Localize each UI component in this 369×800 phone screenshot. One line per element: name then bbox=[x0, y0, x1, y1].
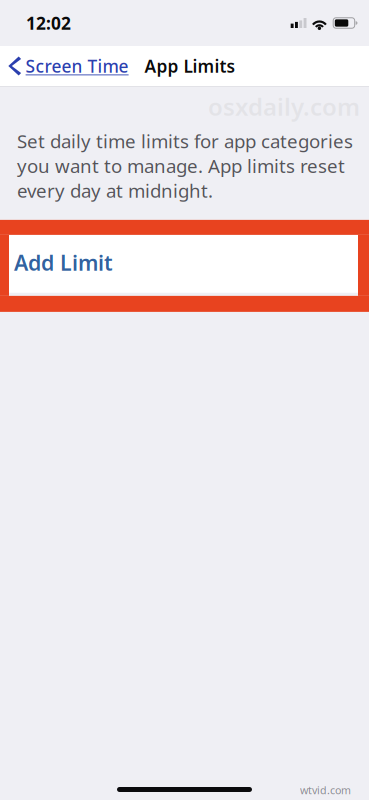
staticText: 12:02 bbox=[26, 11, 71, 34]
staticText: Set daily time limits for app categories… bbox=[17, 128, 353, 203]
staticText: osxdaily.com bbox=[208, 90, 360, 122]
staticText: Add Limit bbox=[14, 248, 113, 276]
staticText: App Limits bbox=[145, 54, 236, 77]
button[interactable]: Screen Time bbox=[0, 46, 135, 86]
staticText: Screen Time bbox=[26, 54, 129, 77]
staticText: wtvid.com bbox=[300, 783, 351, 797]
button[interactable]: Add Limit bbox=[0, 235, 369, 293]
